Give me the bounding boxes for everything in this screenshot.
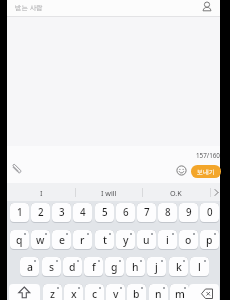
button[interactable]: n [149, 284, 168, 300]
button[interactable]: a [20, 257, 39, 277]
button[interactable]: 5 [95, 203, 114, 223]
staticText: g [111, 260, 118, 274]
button[interactable]: k [169, 257, 188, 277]
button[interactable]: b [127, 284, 146, 300]
staticText: I [40, 188, 43, 198]
staticText: p [206, 233, 213, 247]
button[interactable]: e [52, 230, 71, 250]
staticText: 1 [17, 206, 23, 219]
button[interactable] [189, 284, 219, 300]
button[interactable] [212, 188, 220, 197]
button[interactable]: r [73, 230, 92, 250]
button[interactable]: O.K [142, 183, 210, 202]
staticText: 5 [102, 206, 108, 219]
button[interactable]: g [105, 257, 124, 277]
staticText: k [176, 260, 182, 274]
button[interactable]: m [170, 284, 189, 300]
staticText: f [92, 260, 96, 274]
button[interactable]: o [179, 230, 198, 250]
staticText: 9 [186, 206, 192, 219]
button[interactable]: t [95, 230, 114, 250]
staticText: a [27, 260, 33, 274]
button[interactable]: s [42, 257, 61, 277]
staticText: v [113, 287, 119, 300]
button[interactable]: i [158, 230, 177, 250]
button[interactable]: 0 [200, 203, 219, 223]
button[interactable]: 보내기 [191, 165, 221, 178]
staticText: n [155, 287, 162, 300]
staticText: 8 [165, 206, 171, 219]
staticText: b [133, 287, 140, 300]
staticText: l [198, 260, 201, 274]
staticText: c [92, 287, 98, 300]
staticText: x [71, 287, 77, 300]
button[interactable]: 8 [158, 203, 177, 223]
staticText: i [166, 233, 169, 247]
staticText: s [49, 260, 55, 274]
button[interactable]: 6 [116, 203, 135, 223]
button[interactable]: x [64, 284, 83, 300]
button[interactable]: 7 [137, 203, 156, 223]
staticText: r [80, 233, 85, 247]
staticText: 3 [59, 206, 65, 219]
staticText: 0 [207, 206, 213, 219]
button[interactable]: 4 [73, 203, 92, 223]
staticText: 받는 사람 [15, 3, 43, 12]
button[interactable]: v [106, 284, 125, 300]
staticText: h [132, 260, 139, 274]
button[interactable]: I [7, 183, 75, 202]
button[interactable]: I will [75, 183, 143, 202]
staticText: e [59, 233, 65, 247]
staticText: 4 [80, 206, 86, 219]
button[interactable]: 받는 사람 [7, 0, 220, 16]
button[interactable]: q [10, 230, 29, 250]
button[interactable]: 2 [31, 203, 50, 223]
button[interactable]: c [85, 284, 104, 300]
staticText: 2 [38, 206, 44, 219]
button[interactable]: 9 [179, 203, 198, 223]
staticText: y [123, 233, 129, 247]
staticText: 6 [123, 206, 129, 219]
button[interactable]: l [190, 257, 209, 277]
staticText: d [69, 260, 76, 274]
button[interactable] [202, 1, 212, 13]
staticText: O.K [170, 188, 182, 198]
button[interactable]: z [43, 284, 62, 300]
button[interactable]: 3 [52, 203, 71, 223]
button[interactable]: p [200, 230, 219, 250]
staticText: u [143, 233, 150, 247]
staticText: t [103, 233, 107, 247]
button[interactable]: d [63, 257, 82, 277]
staticText: m [175, 287, 185, 300]
button[interactable]: f [84, 257, 103, 277]
staticText: I will [101, 188, 117, 198]
button[interactable] [176, 165, 187, 176]
button[interactable] [9, 284, 40, 300]
button[interactable]: y [116, 230, 135, 250]
button[interactable]: u [137, 230, 156, 250]
staticText: z [50, 287, 55, 300]
staticText: 보내기 [197, 168, 215, 176]
staticText: q [16, 233, 23, 247]
button[interactable]: 1 [10, 203, 29, 223]
button[interactable]: h [126, 257, 145, 277]
staticText: 7 [144, 206, 150, 219]
staticText: j [155, 260, 158, 274]
staticText: o [185, 233, 192, 247]
button[interactable]: j [147, 257, 166, 277]
button[interactable]: w [31, 230, 50, 250]
button[interactable] [10, 162, 24, 176]
staticText: 157/160 [196, 151, 220, 160]
staticText: w [36, 233, 45, 247]
